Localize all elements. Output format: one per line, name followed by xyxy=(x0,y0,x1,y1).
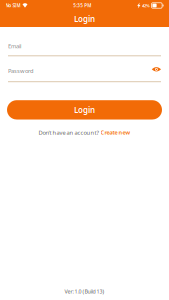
staticText: Email xyxy=(8,42,21,50)
staticText: Ver: 1.0 (Build 13) xyxy=(64,288,104,295)
button[interactable]: Login xyxy=(7,100,162,119)
button[interactable]: Show password xyxy=(152,66,161,72)
staticText: Create new xyxy=(100,129,130,136)
staticText: Don't have an account? xyxy=(38,128,98,136)
button[interactable]: Create new xyxy=(100,129,130,136)
staticText: 42% xyxy=(142,3,150,8)
staticText: No SIM xyxy=(5,2,20,8)
staticText: Password xyxy=(8,67,34,75)
staticText: 5:35 PM xyxy=(73,2,91,9)
staticText: Login xyxy=(74,104,95,115)
staticText: Login xyxy=(74,14,95,24)
